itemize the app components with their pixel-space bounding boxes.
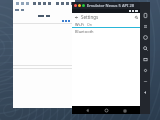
button[interactable]: More: [140, 76, 150, 87]
button[interactable]: Wi-Fi: [72, 21, 140, 28]
staticText: Wi-Fi: [75, 22, 85, 27]
button[interactable]: Bluetooth: [72, 28, 140, 35]
button[interactable]: Back: [72, 13, 140, 21]
button[interactable]: Volume up: [140, 21, 150, 32]
staticText: On: [87, 22, 92, 27]
button[interactable]: Back: [74, 15, 78, 19]
button[interactable]: Record: [140, 65, 150, 76]
button[interactable]: Zoom: [82, 4, 85, 7]
button[interactable]: Back: [84, 107, 91, 114]
button[interactable]: Power: [140, 10, 150, 21]
button[interactable]: Volume: [140, 87, 150, 98]
button[interactable]: Close: [74, 4, 77, 7]
button[interactable]: Screenshot: [140, 54, 150, 65]
button[interactable]: Rotate left: [140, 32, 150, 43]
button[interactable]: Home: [103, 107, 110, 114]
staticText: Settings: [81, 14, 99, 20]
button[interactable]: Minimise: [78, 4, 81, 7]
staticText: Emulator Nexus 5 API 28: [87, 3, 135, 8]
button[interactable]: Zoom: [140, 43, 150, 54]
button[interactable]: Search: [134, 15, 138, 19]
button[interactable]: Recents: [121, 107, 128, 114]
staticText: Bluetooth: [75, 29, 94, 34]
